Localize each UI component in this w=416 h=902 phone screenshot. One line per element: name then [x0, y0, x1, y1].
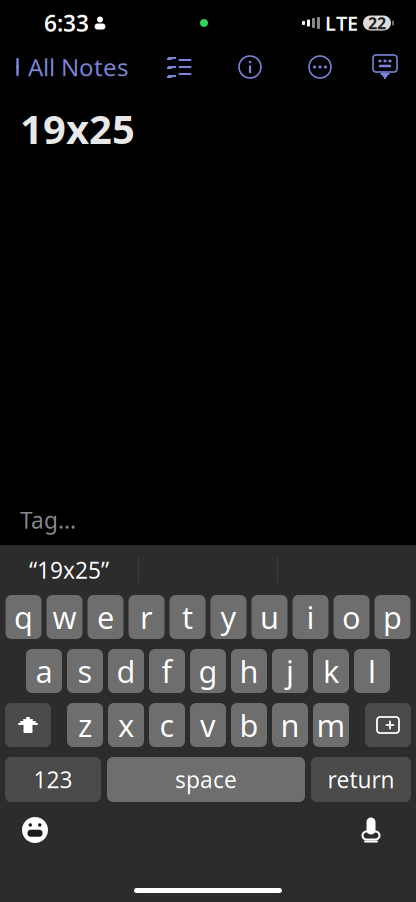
- button[interactable]: Tag...: [0, 503, 416, 537]
- button[interactable]: l: [354, 649, 390, 693]
- staticText: j: [286, 651, 294, 691]
- button[interactable]: b: [231, 703, 267, 747]
- staticText: 123: [33, 764, 72, 794]
- staticText: h: [239, 651, 258, 691]
- button[interactable]: Checklist: [158, 48, 200, 86]
- button[interactable]: k: [313, 649, 349, 693]
- button[interactable]: Dictation: [348, 807, 394, 853]
- staticText: n: [280, 705, 299, 745]
- button[interactable]: y: [210, 595, 246, 639]
- staticText: i: [306, 597, 314, 637]
- staticText: a: [35, 651, 52, 691]
- staticText: u: [260, 597, 279, 637]
- button[interactable]: Info: [230, 47, 270, 87]
- staticText: return: [327, 764, 394, 794]
- staticText: b: [239, 705, 258, 745]
- button[interactable]: w: [46, 595, 82, 639]
- staticText: g: [198, 651, 217, 691]
- button[interactable]: return: [311, 757, 411, 802]
- button[interactable]: space: [107, 757, 305, 802]
- button[interactable]: x: [108, 703, 144, 747]
- staticText: r: [140, 597, 153, 637]
- staticText: Tag...: [20, 505, 76, 535]
- button[interactable]: More: [300, 47, 340, 87]
- button[interactable]: f: [149, 649, 185, 693]
- button[interactable]: q: [5, 595, 41, 639]
- staticText: k: [323, 651, 339, 691]
- button[interactable]: “19x25”: [0, 548, 138, 592]
- button[interactable]: s: [67, 649, 103, 693]
- staticText: All Notes: [28, 51, 128, 83]
- staticText: t: [182, 597, 193, 637]
- button[interactable]: Delete: [365, 703, 411, 747]
- button[interactable]: g: [190, 649, 226, 693]
- button[interactable]: Hide Keyboard: [366, 48, 404, 86]
- staticText: s: [77, 651, 92, 691]
- staticText: o: [342, 597, 361, 637]
- staticText: “19x25”: [29, 555, 109, 585]
- staticText: LTE: [325, 10, 358, 36]
- staticText: 19x25: [20, 102, 135, 155]
- button[interactable]: m: [313, 703, 349, 747]
- button[interactable]: e: [87, 595, 123, 639]
- button[interactable]: p: [374, 595, 410, 639]
- button[interactable]: i: [292, 595, 328, 639]
- staticText: m: [316, 705, 345, 745]
- button[interactable]: j: [272, 649, 308, 693]
- staticText: p: [383, 597, 402, 637]
- button[interactable]: r: [128, 595, 164, 639]
- button[interactable]: 123: [5, 757, 101, 802]
- button[interactable]: c: [149, 703, 185, 747]
- staticText: w: [52, 597, 76, 637]
- staticText: d: [116, 651, 135, 691]
- button[interactable]: z: [67, 703, 103, 747]
- staticText: f: [161, 651, 172, 691]
- staticText: y: [220, 597, 236, 637]
- staticText: 22: [368, 12, 386, 34]
- button[interactable]: v: [190, 703, 226, 747]
- button[interactable]: t: [169, 595, 205, 639]
- button[interactable]: u: [251, 595, 287, 639]
- staticText: x: [118, 705, 134, 745]
- button[interactable]: Shift: [5, 703, 51, 747]
- staticText: 6:33: [44, 8, 89, 38]
- staticText: z: [78, 705, 92, 745]
- button[interactable]: o: [333, 595, 369, 639]
- staticText: l: [368, 651, 376, 691]
- button[interactable]: All Notes: [0, 45, 128, 89]
- staticText: e: [97, 597, 114, 637]
- button[interactable]: n: [272, 703, 308, 747]
- staticText: space: [175, 764, 237, 794]
- button[interactable]: d: [108, 649, 144, 693]
- button[interactable]: Emoji: [12, 807, 58, 853]
- button[interactable]: a: [26, 649, 62, 693]
- staticText: q: [14, 597, 33, 637]
- staticText: v: [200, 705, 216, 745]
- staticText: c: [159, 705, 174, 745]
- button[interactable]: h: [231, 649, 267, 693]
